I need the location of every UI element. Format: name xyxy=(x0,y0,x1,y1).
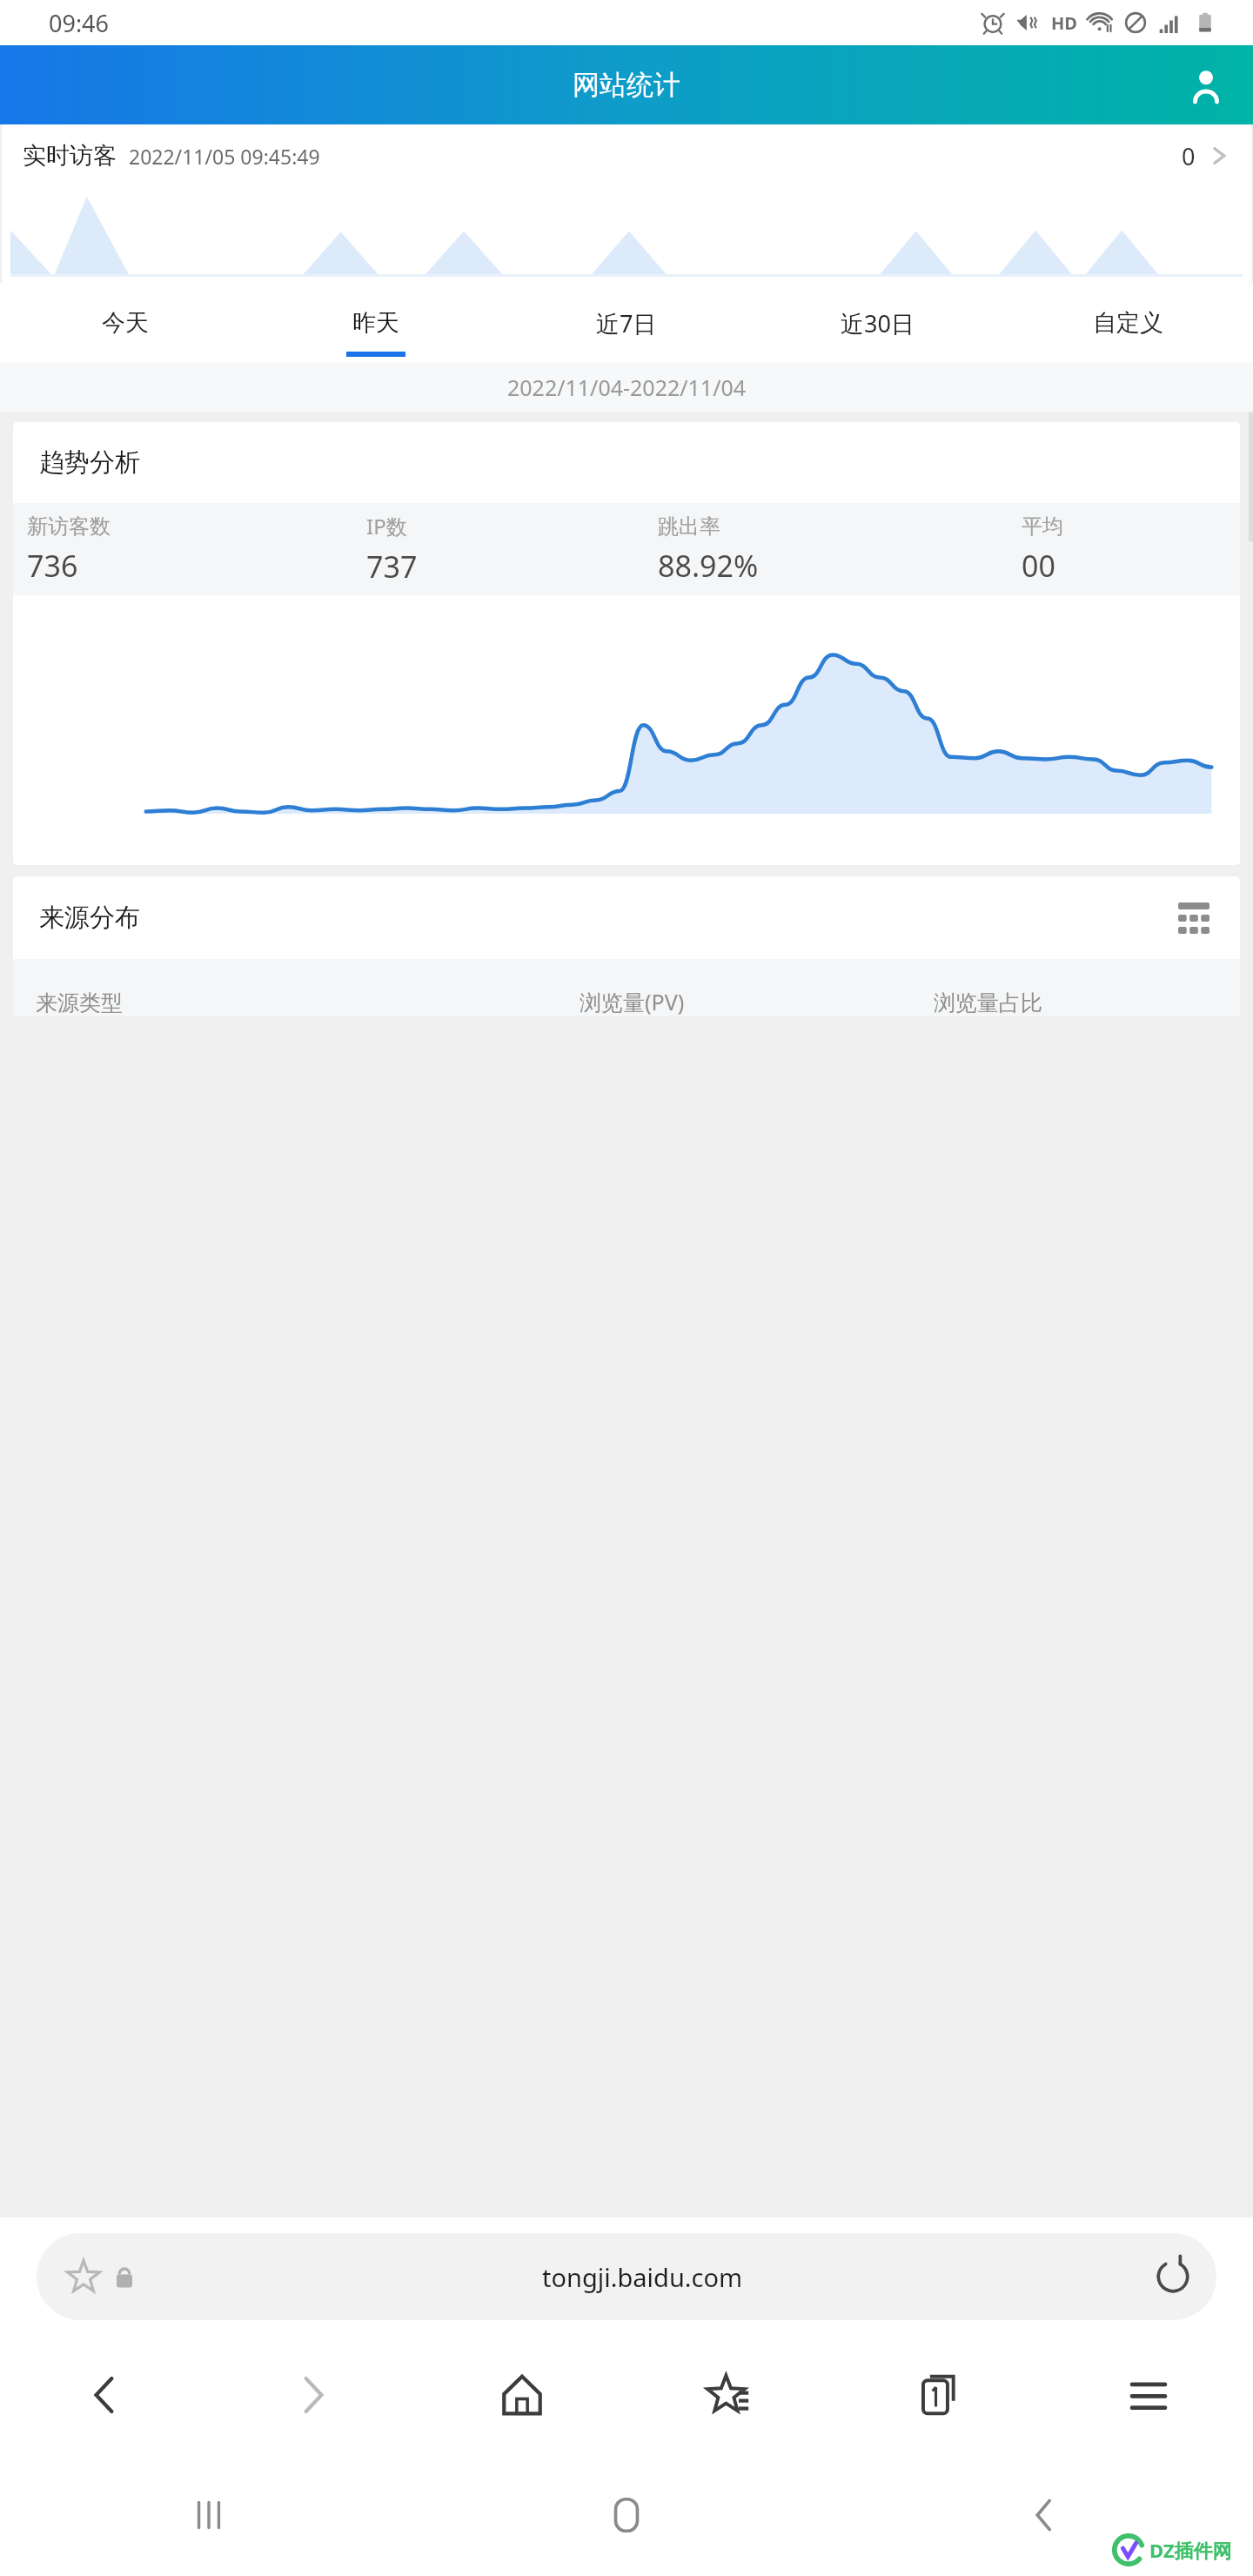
button[interactable]: Bookmarks xyxy=(626,2348,835,2442)
button[interactable]: 今天 xyxy=(0,283,251,363)
staticText: 网站统计 xyxy=(573,68,680,102)
staticText: 自定义 xyxy=(1093,308,1163,338)
button[interactable]: Forward xyxy=(209,2348,418,2442)
button[interactable]: Home xyxy=(418,2348,626,2442)
button[interactable]: 自定义 xyxy=(1002,283,1253,363)
staticText: 实时访客 xyxy=(23,141,117,171)
button[interactable]: Account xyxy=(1183,63,1229,108)
staticText: 2022/11/04-2022/11/04 xyxy=(507,372,747,402)
staticText: 跳出率 xyxy=(658,513,720,540)
staticText: 浏览量占比 xyxy=(934,989,1217,1016)
staticText: 趋势分析 xyxy=(39,446,140,479)
staticText: IP数 xyxy=(366,512,407,540)
staticText: 今天 xyxy=(102,308,149,338)
button[interactable]: 近7日 xyxy=(501,283,752,363)
staticText: 平均 xyxy=(1022,513,1063,540)
staticText: 09:46 xyxy=(49,7,110,39)
button[interactable]: 昨天 xyxy=(251,283,501,363)
staticText: 来源类型 xyxy=(36,989,580,1016)
button[interactable]: Tabs xyxy=(835,2348,1044,2442)
button[interactable]: Reload xyxy=(1149,2252,1197,2301)
staticText: 737 xyxy=(366,547,418,587)
staticText: 0 xyxy=(1182,140,1196,172)
button[interactable]: 实时访客 xyxy=(2,124,1251,283)
button[interactable]: Home xyxy=(418,2454,835,2576)
button[interactable]: Bookmark xyxy=(61,2254,106,2299)
staticText: DZ插件网 xyxy=(1149,2537,1232,2563)
button[interactable]: Bookmark xyxy=(37,2233,1216,2320)
button[interactable]: Recents xyxy=(0,2454,418,2576)
staticText: 736 xyxy=(27,546,78,586)
staticText: tongji.baidu.com xyxy=(542,2260,743,2294)
staticText: 近30日 xyxy=(841,307,915,339)
button[interactable]: Menu xyxy=(1044,2348,1253,2442)
staticText: 来源分布 xyxy=(39,902,140,934)
staticText: 浏览量(PV) xyxy=(580,987,934,1016)
button[interactable]: Back xyxy=(0,2348,209,2442)
staticText: 新访客数 xyxy=(27,513,111,540)
button[interactable]: Back xyxy=(835,2454,1253,2576)
staticText: 88.92% xyxy=(658,546,759,586)
button[interactable]: Grid view xyxy=(1174,898,1214,938)
staticText: 昨天 xyxy=(352,308,399,338)
staticText: HD xyxy=(1051,11,1077,35)
button[interactable]: 近30日 xyxy=(752,283,1002,363)
staticText: 近7日 xyxy=(596,307,657,339)
staticText: 2022/11/05 09:45:49 xyxy=(129,143,320,170)
staticText: 00 xyxy=(1022,546,1055,586)
